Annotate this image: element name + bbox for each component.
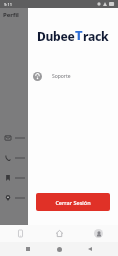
button[interactable]: Soporte: [28, 66, 118, 86]
button[interactable]: Perfil: [79, 225, 118, 242]
staticText: rack: [83, 28, 109, 44]
staticText: Perfil: [3, 11, 19, 19]
staticText: Soporte: [52, 73, 71, 80]
staticText: T: [75, 26, 83, 44]
button[interactable]: [0, 192, 28, 203]
staticText: Dubee: [37, 28, 75, 44]
button[interactable]: [0, 172, 28, 183]
button[interactable]: Dispositivos: [0, 225, 40, 242]
staticText: 9:11: [4, 2, 12, 7]
button[interactable]: [0, 132, 28, 143]
staticText: Cerrar Sesión: [55, 199, 91, 206]
button[interactable]: Cerrar Sesión: [36, 193, 110, 211]
button[interactable]: [0, 152, 28, 163]
button[interactable]: Inicio: [40, 225, 79, 242]
